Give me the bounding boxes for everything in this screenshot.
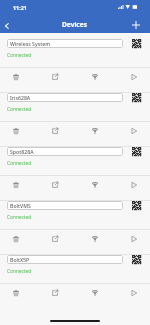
staticText: 11:21 [13,4,27,11]
button[interactable]: Wireless System [7,39,123,48]
button[interactable]: Add device [129,17,143,33]
button[interactable]: Edit [47,178,63,191]
button[interactable]: Delete [8,178,24,191]
staticText: Iris628A [10,94,31,101]
button[interactable]: Delete [8,124,24,137]
button[interactable]: Iris628A [7,93,123,102]
button[interactable]: Delete [8,232,24,245]
button[interactable]: Play [126,70,142,83]
button[interactable]: Delete [8,70,24,83]
button[interactable]: Scan QR code [131,39,141,48]
staticText: Connected [7,106,32,113]
button[interactable]: BoltVMS [7,201,123,210]
button[interactable]: Filter [87,124,103,137]
button[interactable]: BoltX5P [7,255,123,264]
button[interactable]: Play [126,286,142,299]
staticText: Connected [7,160,32,167]
button[interactable]: Scan QR code [131,147,141,156]
staticText: Wireless System [10,40,51,47]
button[interactable]: Scan QR code [131,201,141,210]
button[interactable]: Edit [47,286,63,299]
button[interactable]: Filter [87,232,103,245]
button[interactable]: Filter [87,286,103,299]
button[interactable]: Edit [47,232,63,245]
staticText: BoltX5P [10,256,30,263]
staticText: Devices [62,20,88,29]
button[interactable]: Delete [8,286,24,299]
staticText: Connected [7,214,32,221]
staticText: Connected [7,52,32,59]
button[interactable]: Back [1,18,13,34]
button[interactable]: Play [126,124,142,137]
button[interactable]: Scan QR code [131,93,141,102]
button[interactable]: Edit [47,70,63,83]
button[interactable]: Filter [87,178,103,191]
staticText: Connected [7,268,32,275]
staticText: BoltVMS [10,202,31,209]
staticText: Spot828A [10,148,34,155]
button[interactable]: Play [126,178,142,191]
button[interactable]: Edit [47,124,63,137]
button[interactable]: Scan QR code [131,255,141,264]
button[interactable]: Filter [87,70,103,83]
button[interactable]: Spot828A [7,147,123,156]
button[interactable]: Play [126,232,142,245]
